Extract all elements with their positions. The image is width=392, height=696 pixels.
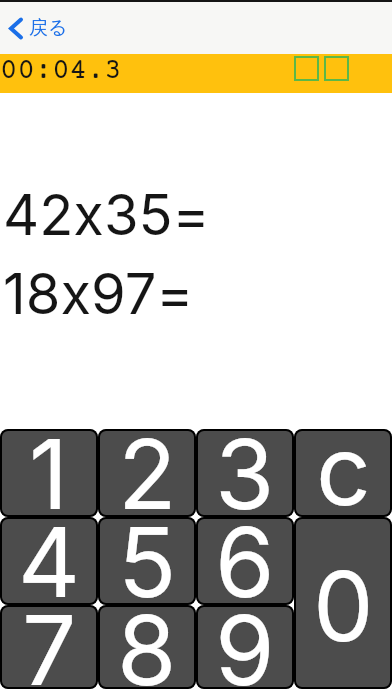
button[interactable]: 3	[196, 429, 294, 517]
staticText: 9	[215, 605, 275, 689]
button[interactable]: 4	[0, 517, 98, 605]
staticText: 戻る	[29, 16, 68, 40]
staticText: 4	[18, 517, 81, 605]
button[interactable]: 7	[0, 605, 98, 689]
staticText: 42x35=	[3, 181, 210, 249]
staticText: 00:04.3	[0, 55, 122, 88]
staticText: 7	[22, 605, 77, 689]
button[interactable]: 5	[98, 517, 196, 605]
button[interactable]: 2	[98, 429, 196, 517]
button[interactable]: c	[294, 429, 392, 517]
staticText: 1	[29, 429, 69, 517]
staticText: 3	[215, 429, 275, 517]
staticText: 8	[117, 605, 177, 689]
staticText: 2	[118, 429, 177, 517]
staticText: 18x97=	[3, 260, 194, 328]
button[interactable]: 9	[196, 605, 294, 689]
staticText: 6	[215, 517, 275, 605]
button[interactable]: 1	[0, 429, 98, 517]
staticText: 5	[118, 517, 177, 605]
button[interactable]: 8	[98, 605, 196, 689]
staticText: 0	[313, 548, 374, 664]
button[interactable]: 0	[294, 517, 392, 689]
button[interactable]: 6	[196, 517, 294, 605]
staticText: c	[316, 429, 371, 517]
button[interactable]: 戻る	[9, 16, 68, 40]
